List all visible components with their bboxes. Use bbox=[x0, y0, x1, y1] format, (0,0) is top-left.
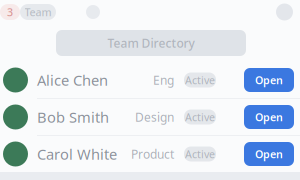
staticText: Open bbox=[255, 110, 283, 124]
button[interactable]: 3 bbox=[0, 4, 20, 20]
staticText: Team bbox=[24, 5, 51, 19]
button[interactable]: Open bbox=[244, 68, 294, 92]
staticText: Team Directory bbox=[107, 35, 194, 51]
staticText: Active bbox=[185, 147, 215, 161]
staticText: Open bbox=[255, 147, 283, 161]
staticText: Open bbox=[255, 73, 283, 87]
staticText: Active bbox=[185, 110, 215, 124]
button[interactable]: Search bbox=[86, 5, 100, 19]
staticText: Bob Smith bbox=[37, 107, 109, 127]
button[interactable]: Open bbox=[244, 142, 294, 166]
button[interactable]: Bob Smith bbox=[0, 99, 216, 135]
button[interactable]: Carol White bbox=[0, 136, 216, 172]
staticText: Product bbox=[131, 146, 174, 162]
staticText: Carol White bbox=[37, 144, 117, 164]
staticText: Design bbox=[135, 109, 174, 125]
staticText: Alice Chen bbox=[37, 70, 108, 90]
staticText: 3 bbox=[7, 5, 13, 19]
button[interactable]: Team bbox=[20, 4, 56, 20]
button[interactable]: Profile bbox=[276, 3, 293, 20]
button[interactable]: Open bbox=[244, 105, 294, 129]
staticText: Active bbox=[185, 73, 215, 87]
staticText: Eng bbox=[153, 72, 174, 88]
button[interactable]: Alice Chen bbox=[0, 62, 216, 98]
